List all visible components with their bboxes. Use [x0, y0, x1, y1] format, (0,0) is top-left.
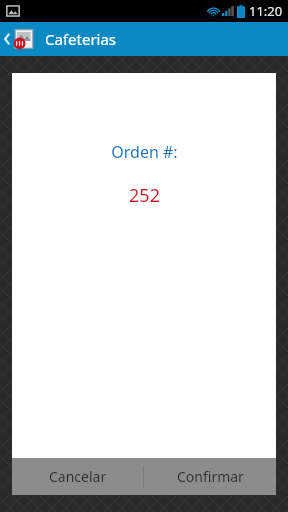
staticText: Confirmar	[177, 467, 244, 486]
button[interactable]: Confirmar	[144, 458, 276, 495]
staticText: Cafeterias	[45, 29, 117, 49]
staticText: Cancelar	[49, 467, 107, 486]
staticText: Orden #:	[111, 141, 178, 163]
button[interactable]: Cancelar	[12, 458, 143, 495]
staticText: 252	[129, 183, 160, 208]
staticText: 11:20	[249, 2, 283, 20]
button[interactable]: Navigate up	[0, 22, 37, 56]
